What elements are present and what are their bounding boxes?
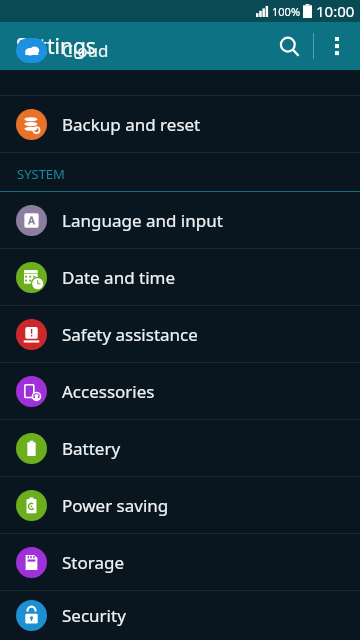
staticText: Accessories (62, 380, 155, 403)
staticText: Settings (16, 32, 96, 61)
staticText: Backup and reset (62, 113, 201, 136)
staticText: 100% (272, 4, 301, 19)
staticText: Date and time (62, 266, 176, 289)
button[interactable]: Accessories (0, 363, 360, 419)
staticText: 10:00 (316, 1, 355, 21)
staticText: Language and input (62, 209, 223, 232)
staticText: Security (62, 604, 126, 627)
button[interactable]: Language and input (0, 192, 360, 248)
button[interactable]: Power saving (0, 477, 360, 533)
staticText: Safety assistance (62, 323, 198, 346)
button[interactable]: Battery (0, 420, 360, 476)
button[interactable]: Backup and reset (0, 96, 360, 152)
staticText: Battery (62, 437, 121, 460)
button[interactable]: Security (0, 591, 360, 640)
staticText: Cloud (62, 39, 109, 62)
staticText: Storage (62, 551, 125, 574)
button[interactable]: Search (265, 22, 313, 70)
button[interactable]: Date and time (0, 249, 360, 305)
button[interactable]: Safety assistance (0, 306, 360, 362)
staticText: Power saving (62, 494, 169, 517)
staticText: SYSTEM (17, 165, 65, 183)
button[interactable]: Storage (0, 534, 360, 590)
button[interactable]: More options (314, 23, 360, 69)
